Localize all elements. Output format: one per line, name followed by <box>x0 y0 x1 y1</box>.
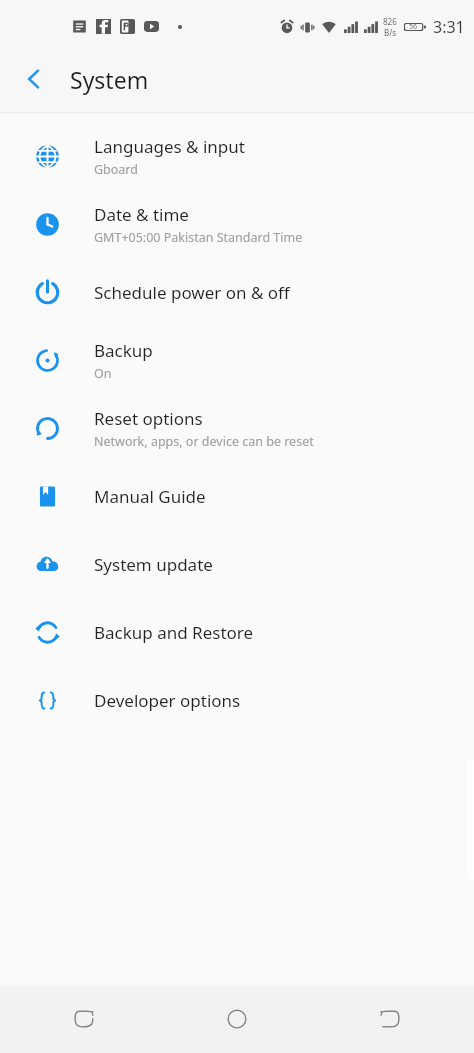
button[interactable]: Backup and Restore <box>0 598 474 666</box>
button[interactable]: Languages & input <box>0 122 474 190</box>
button[interactable]: Back <box>8 53 60 105</box>
button[interactable]: Developer options <box>0 666 474 734</box>
staticText: Languages & input <box>94 135 245 158</box>
staticText: 3:31 <box>433 16 465 38</box>
staticText: Backup <box>94 339 153 362</box>
staticText: Manual Guide <box>94 485 206 508</box>
staticText: 826 <box>383 16 397 27</box>
staticText: Network, apps, or device can be reset <box>94 433 314 450</box>
button[interactable]: Recent apps <box>362 991 418 1047</box>
staticText: Schedule power on & off <box>94 281 290 304</box>
button[interactable]: System update <box>0 530 474 598</box>
staticText: System update <box>94 553 213 576</box>
staticText: Reset options <box>94 407 203 430</box>
staticText: Backup and Restore <box>94 621 254 644</box>
button[interactable]: Home <box>209 991 265 1047</box>
staticText: Gboard <box>94 161 138 178</box>
staticText: Date & time <box>94 203 189 226</box>
staticText: B/s <box>384 27 397 38</box>
staticText: 56 <box>409 22 418 32</box>
button[interactable]: Backup <box>0 326 474 394</box>
staticText: GMT+05:00 Pakistan Standard Time <box>94 229 303 246</box>
button[interactable]: Schedule power on & off <box>0 258 474 326</box>
staticText: System <box>70 64 149 95</box>
staticText: Developer options <box>94 689 241 712</box>
button[interactable]: Reset options <box>0 394 474 462</box>
button[interactable]: Manual Guide <box>0 462 474 530</box>
button[interactable]: Back <box>56 991 112 1047</box>
staticText: On <box>94 365 112 382</box>
button[interactable]: Date & time <box>0 190 474 258</box>
